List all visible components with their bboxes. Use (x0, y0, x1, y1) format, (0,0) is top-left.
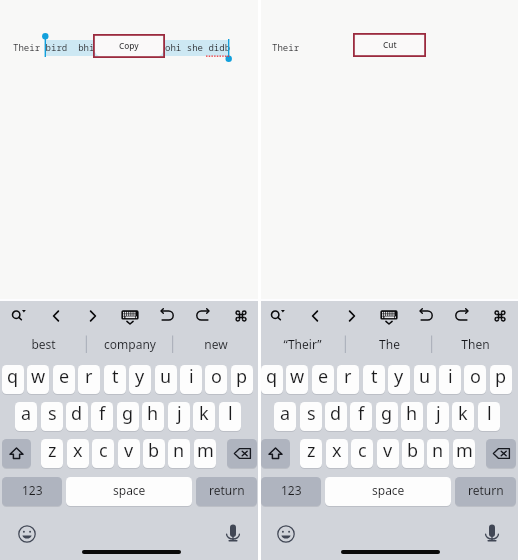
button[interactable]: Backspace (486, 439, 516, 469)
button[interactable]: Cut (353, 33, 426, 57)
button[interactable]: Hide keyboard (370, 300, 407, 331)
button[interactable]: Redo (444, 300, 481, 331)
staticText: new (204, 336, 228, 352)
button[interactable]: u (155, 365, 177, 395)
button[interactable]: Backspace (227, 439, 257, 469)
button[interactable]: a (15, 402, 37, 432)
button[interactable]: x (326, 439, 348, 469)
button[interactable]: Dictation (220, 520, 245, 545)
button[interactable]: best (0, 332, 87, 360)
button[interactable]: s (300, 402, 322, 432)
staticText: r (344, 365, 352, 389)
button[interactable]: Redo (185, 300, 222, 331)
button[interactable]: q (261, 365, 283, 395)
button[interactable]: Search (259, 300, 296, 331)
button[interactable]: w (27, 365, 49, 395)
button[interactable]: space (66, 477, 192, 507)
staticText: Their (272, 41, 300, 53)
button[interactable]: Previous (296, 300, 333, 331)
button[interactable]: new (173, 332, 259, 360)
button[interactable]: Commands (481, 300, 518, 331)
button[interactable]: 123 (2, 477, 62, 507)
button[interactable]: Previous (37, 300, 74, 331)
button[interactable]: m (453, 439, 475, 469)
button[interactable]: w (286, 365, 308, 395)
button[interactable]: company (87, 332, 173, 360)
button[interactable]: b (143, 439, 165, 469)
button[interactable]: “Their” (259, 332, 346, 360)
button[interactable]: l (219, 402, 241, 432)
button[interactable]: Emoji (14, 521, 39, 546)
button[interactable]: space (325, 477, 451, 507)
button[interactable]: a (274, 402, 296, 432)
button[interactable]: r (337, 365, 359, 395)
button[interactable]: k (452, 402, 474, 432)
button[interactable]: Copy (93, 34, 165, 58)
button[interactable]: 123 (261, 477, 321, 507)
button[interactable]: Next (74, 300, 111, 331)
button[interactable]: return (455, 477, 516, 507)
button[interactable]: p (231, 365, 253, 395)
staticText: c (99, 439, 108, 463)
button[interactable]: Dictation (479, 520, 504, 545)
button[interactable]: i (439, 365, 461, 395)
button[interactable]: s (41, 402, 63, 432)
button[interactable]: k (193, 402, 215, 432)
button[interactable]: e (312, 365, 334, 395)
staticText: b (148, 439, 160, 463)
button[interactable]: g (376, 402, 398, 432)
staticText: l (228, 402, 233, 426)
button[interactable]: Next (333, 300, 370, 331)
staticText: company (104, 336, 156, 352)
button[interactable]: m (194, 439, 216, 469)
button[interactable]: q (2, 365, 24, 395)
button[interactable]: y (129, 365, 151, 395)
button[interactable]: b (402, 439, 424, 469)
button[interactable]: Shift (2, 439, 31, 469)
button[interactable]: v (118, 439, 140, 469)
button[interactable]: Emoji (273, 521, 298, 546)
button[interactable]: c (351, 439, 373, 469)
button[interactable]: Commands (222, 300, 259, 331)
button[interactable]: n (427, 439, 449, 469)
button[interactable]: d (66, 402, 88, 432)
button[interactable]: t (363, 365, 385, 395)
button[interactable]: Search (0, 300, 37, 331)
button[interactable]: h (142, 402, 164, 432)
button[interactable]: p (490, 365, 512, 395)
button[interactable]: g (117, 402, 139, 432)
button[interactable]: i (180, 365, 202, 395)
button[interactable]: j (427, 402, 449, 432)
button[interactable]: d (325, 402, 347, 432)
button[interactable]: o (464, 365, 486, 395)
button[interactable]: e (53, 365, 75, 395)
button[interactable]: z (41, 439, 63, 469)
button[interactable]: n (168, 439, 190, 469)
staticText: o (470, 365, 481, 389)
button[interactable]: f (350, 402, 372, 432)
button[interactable]: Shift (261, 439, 290, 469)
button[interactable]: Undo (148, 300, 185, 331)
staticText: 123 (281, 482, 302, 498)
button[interactable]: c (92, 439, 114, 469)
button[interactable]: return (196, 477, 257, 507)
staticText: k (458, 402, 468, 426)
button[interactable]: o (205, 365, 227, 395)
button[interactable]: l (478, 402, 500, 432)
staticText: u (419, 365, 431, 389)
button[interactable]: Undo (407, 300, 444, 331)
button[interactable]: z (300, 439, 322, 469)
button[interactable]: j (168, 402, 190, 432)
button[interactable]: x (67, 439, 89, 469)
button[interactable]: f (91, 402, 113, 432)
button[interactable]: r (78, 365, 100, 395)
button[interactable]: u (414, 365, 436, 395)
staticText: e (59, 365, 70, 389)
button[interactable]: The (346, 332, 432, 360)
button[interactable]: Hide keyboard (111, 300, 148, 331)
button[interactable]: t (104, 365, 126, 395)
button[interactable]: h (401, 402, 423, 432)
button[interactable]: Then (432, 332, 518, 360)
button[interactable]: v (377, 439, 399, 469)
button[interactable]: y (388, 365, 410, 395)
